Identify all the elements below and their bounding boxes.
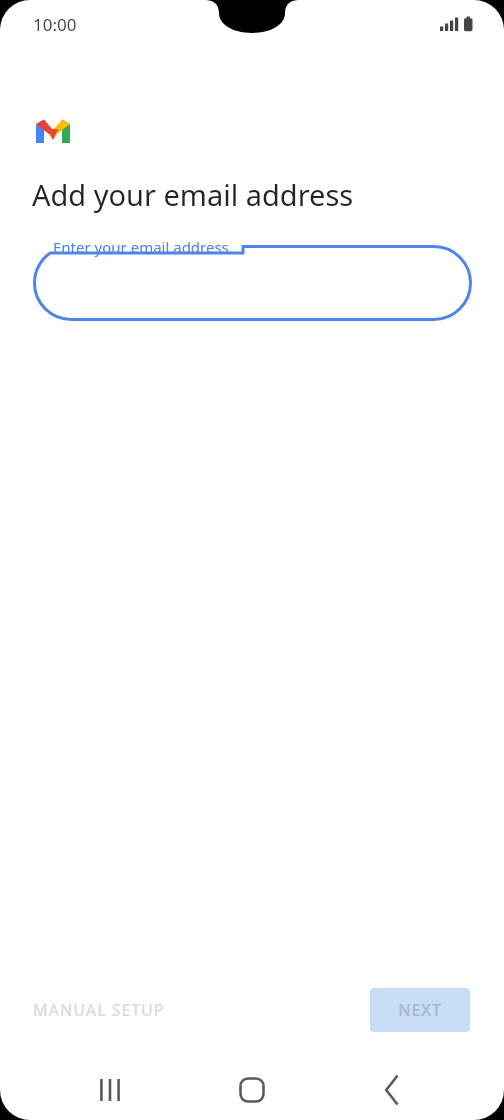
staticText: 10:00: [33, 13, 77, 36]
button[interactable]: Back: [352, 1060, 432, 1120]
button[interactable]: Enter your email address: [33, 245, 472, 321]
button[interactable]: Recent apps: [70, 1060, 150, 1120]
button[interactable]: MANUAL SETUP: [20, 988, 178, 1032]
staticText: NEXT: [398, 999, 442, 1021]
button[interactable]: NEXT: [370, 988, 470, 1032]
staticText: MANUAL SETUP: [33, 999, 165, 1021]
staticText: Enter your email address: [53, 237, 229, 257]
button[interactable]: Home: [212, 1060, 292, 1120]
staticText: Add your email address: [32, 175, 354, 214]
